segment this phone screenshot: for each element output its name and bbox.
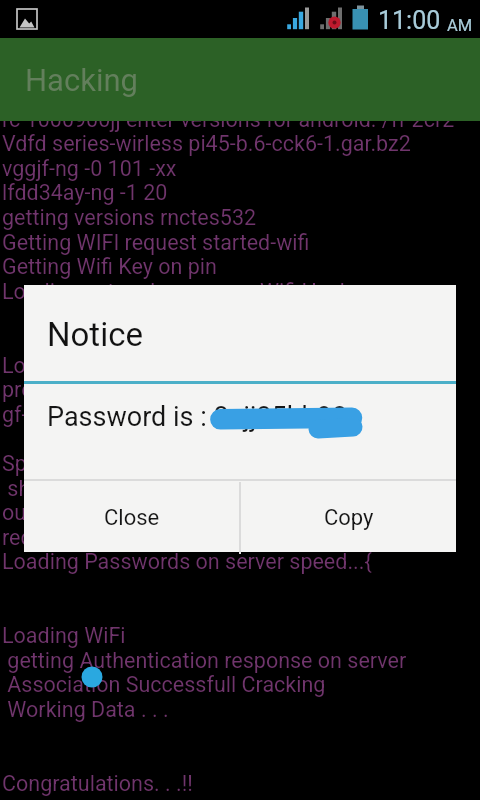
- button[interactable]: Close: [24, 482, 239, 554]
- staticText: Notice: [47, 315, 143, 354]
- staticText: Password is : 8ujj85hb98: [47, 401, 348, 433]
- staticText: rc 1000900jj enter versions for android.…: [2, 107, 455, 132]
- staticText: Getting WIFI request started-wifi: [2, 230, 310, 255]
- staticText: Loading network response Wifi Hacker: [2, 279, 370, 304]
- staticText: getting versions rnctes532: [2, 205, 257, 230]
- staticText: Speed testing of server . . .: [2, 451, 256, 476]
- staticText: AM: [447, 16, 473, 35]
- staticText: Getting Wifi Key on pin: [2, 254, 217, 279]
- staticText: Association Successfull Cracking: [2, 672, 326, 697]
- staticText: Copy: [324, 505, 374, 531]
- staticText: Loading server response . . .: [2, 353, 270, 378]
- staticText: output result on server: [2, 500, 217, 525]
- staticText: Congratulations. . .!!: [2, 771, 193, 796]
- staticText: Working Data . . .: [2, 697, 169, 722]
- staticText: processing data on wifi hack: [2, 377, 275, 402]
- staticText: Vdfd series-wirless pi45-b.6-cck6-1.gar.…: [2, 131, 411, 156]
- staticText: should be 100% for hacking: [2, 476, 271, 501]
- staticText: Loading WiFi: [2, 623, 126, 648]
- staticText: Loading Passwords on server speed...{: [2, 549, 372, 574]
- staticText: 11:00: [378, 6, 441, 35]
- staticText: Close: [104, 505, 160, 531]
- staticText: vggjf-ng -0 101 -xx: [2, 156, 177, 181]
- staticText: request sending . . .: [2, 525, 189, 550]
- button[interactable]: Copy: [241, 482, 456, 554]
- staticText: gf-445-ddf-0 serverload: [2, 402, 226, 427]
- staticText: getting Authentication response on serve…: [2, 648, 407, 673]
- staticText: Hacking: [25, 62, 138, 98]
- staticText: lfdd34ay-ng -1 20: [2, 180, 168, 205]
